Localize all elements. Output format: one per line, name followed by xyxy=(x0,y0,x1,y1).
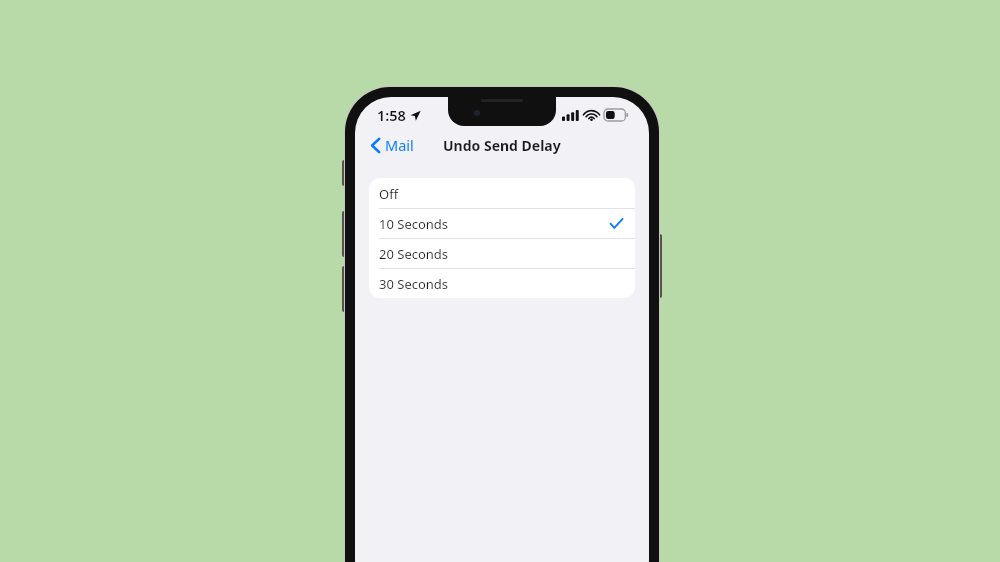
staticText: 1:58 xyxy=(377,105,406,125)
button[interactable]: 30 Seconds xyxy=(369,268,635,298)
button[interactable]: 20 Seconds xyxy=(369,238,635,268)
staticText: Off xyxy=(379,185,399,203)
staticText: Undo Send Delay xyxy=(443,136,561,155)
staticText: 20 Seconds xyxy=(379,245,449,263)
button[interactable]: 10 Seconds xyxy=(369,208,635,238)
button[interactable]: Off xyxy=(369,178,635,208)
staticText: 30 Seconds xyxy=(379,275,449,293)
button[interactable]: Mail xyxy=(355,131,424,159)
staticText: Mail xyxy=(385,135,414,155)
staticText: 10 Seconds xyxy=(379,215,449,233)
